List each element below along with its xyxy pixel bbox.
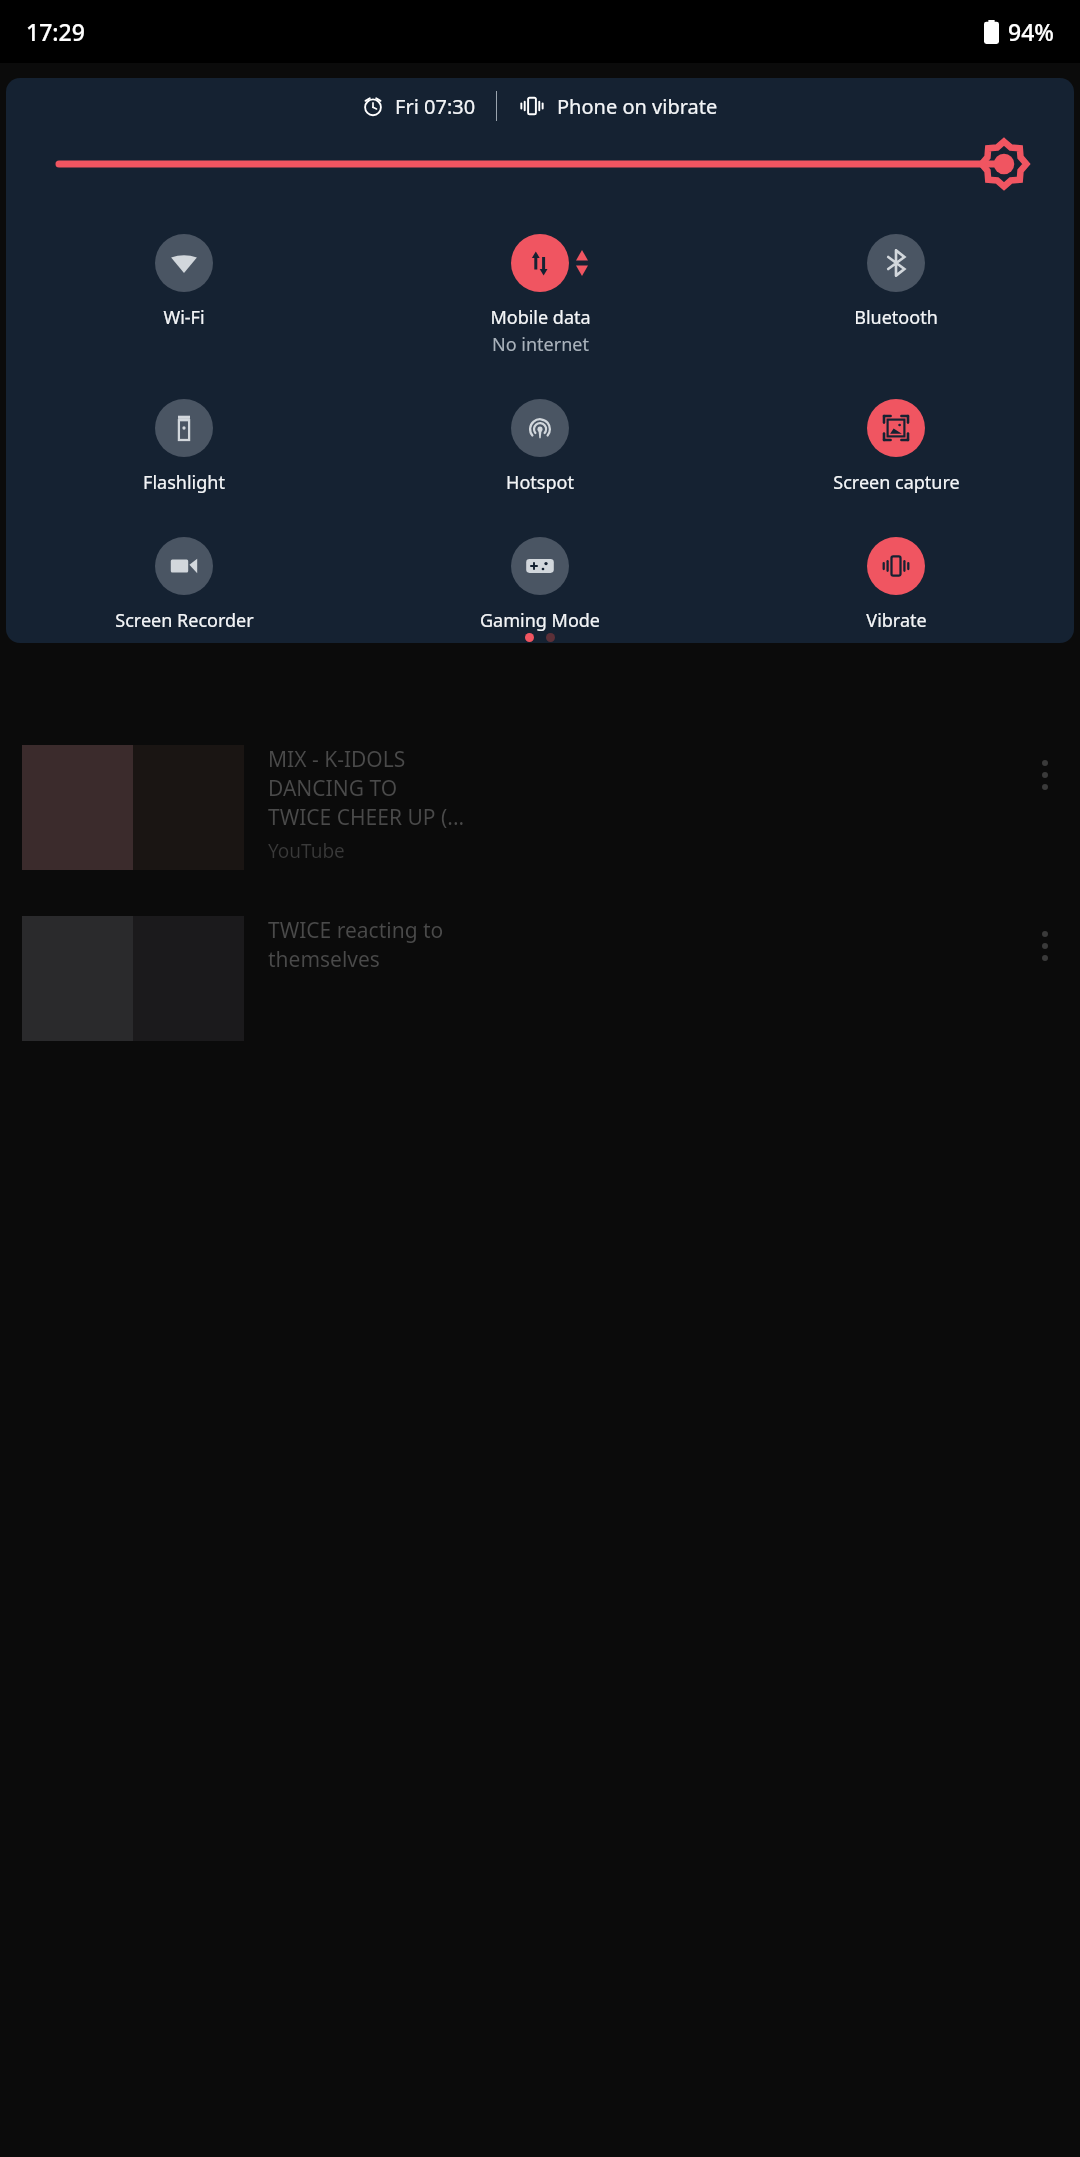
staticText: 94% xyxy=(1008,16,1054,47)
staticText: MIX - K-IDOLS xyxy=(268,745,406,774)
staticText: Fri 07:30 xyxy=(395,93,476,120)
staticText: Hotspot xyxy=(506,470,574,495)
staticText: YouTube xyxy=(268,838,345,864)
staticText: Phone on vibrate xyxy=(557,93,718,120)
button[interactable]: Flashlight xyxy=(6,399,362,495)
staticText: No internet xyxy=(492,332,589,357)
button[interactable]: Mobile data xyxy=(362,234,718,357)
staticText: themselves xyxy=(268,945,380,974)
button[interactable]: Bluetooth xyxy=(718,234,1074,330)
staticText: Gaming Mode xyxy=(480,608,600,633)
staticText: Vibrate xyxy=(866,608,927,633)
button[interactable]: Wi-Fi xyxy=(6,234,362,330)
staticText: Bluetooth xyxy=(854,305,938,330)
staticText: TWICE reacting to xyxy=(268,916,444,945)
button[interactable]: Screen Recorder xyxy=(6,537,362,633)
staticText: 17:29 xyxy=(26,16,85,47)
staticText: Screen capture xyxy=(833,470,960,495)
staticText: Flashlight xyxy=(143,470,225,495)
staticText: TWICE CHEER UP (... xyxy=(268,803,465,832)
button[interactable]: Gaming Mode xyxy=(362,537,718,633)
button[interactable]: Brightness xyxy=(6,134,1074,194)
staticText: Mobile data xyxy=(490,305,591,330)
button[interactable]: Screen capture xyxy=(718,399,1074,495)
button[interactable]: Hotspot xyxy=(362,399,718,495)
staticText: DANCING TO xyxy=(268,774,398,803)
staticText: Wi-Fi xyxy=(163,305,205,330)
staticText: Screen Recorder xyxy=(115,608,254,633)
button[interactable]: Vibrate xyxy=(718,537,1074,633)
